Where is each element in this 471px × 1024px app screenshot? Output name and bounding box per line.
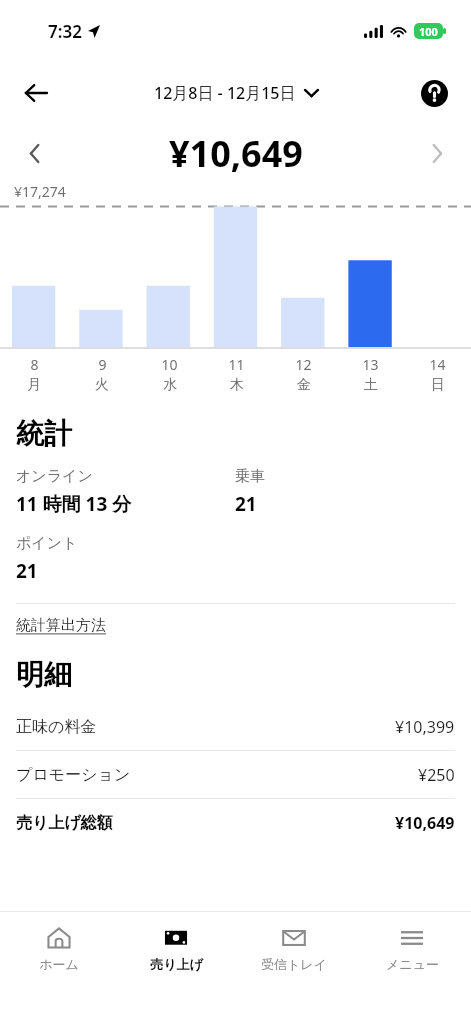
staticText: 金 bbox=[297, 376, 311, 394]
staticText: ポイント bbox=[16, 534, 78, 553]
staticText: 日 bbox=[431, 376, 445, 394]
staticText: 12 bbox=[295, 355, 312, 374]
staticText: ¥17,274 bbox=[14, 182, 66, 201]
staticText: 14 bbox=[429, 355, 446, 374]
staticText: 12月8日 - 12月15日 bbox=[154, 82, 296, 104]
staticText: 21 bbox=[16, 558, 38, 584]
button[interactable]: ヘルプ bbox=[413, 72, 455, 114]
staticText: ¥250 bbox=[418, 764, 455, 786]
staticText: ¥10,649 bbox=[169, 129, 303, 178]
button[interactable]: 売り上げ総額 bbox=[16, 799, 455, 846]
staticText: 水 bbox=[163, 376, 177, 394]
staticText: 統計算出方法 bbox=[16, 616, 106, 635]
button[interactable]: 売り上げ bbox=[117, 912, 235, 972]
button[interactable]: 統計算出方法 bbox=[16, 616, 106, 635]
staticText: オンライン bbox=[16, 467, 93, 486]
staticText: 月 bbox=[27, 376, 41, 394]
staticText: ¥10,649 bbox=[395, 812, 455, 834]
button[interactable]: ホーム bbox=[0, 912, 117, 972]
staticText: プロモーション bbox=[16, 765, 131, 785]
staticText: 火 bbox=[95, 376, 109, 394]
staticText: 受信トレイ bbox=[261, 956, 327, 972]
button[interactable]: 受信トレイ bbox=[235, 912, 353, 972]
staticText: 11 時間 13 分 bbox=[16, 491, 132, 517]
staticText: 7:32 bbox=[48, 20, 82, 43]
staticText: 土 bbox=[364, 376, 378, 394]
staticText: 8 bbox=[30, 355, 39, 374]
staticText: 9 bbox=[98, 355, 107, 374]
staticText: 木 bbox=[230, 376, 244, 394]
staticText: 21 bbox=[235, 491, 257, 517]
staticText: 13 bbox=[362, 355, 379, 374]
button[interactable]: メニュー bbox=[353, 912, 471, 972]
button[interactable]: プロモーション bbox=[16, 751, 455, 798]
staticText: 11 bbox=[228, 355, 245, 374]
staticText: ¥10,399 bbox=[395, 716, 455, 738]
button[interactable]: 次の週 bbox=[417, 133, 457, 173]
staticText: ホーム bbox=[39, 956, 79, 972]
staticText: 乗車 bbox=[235, 467, 265, 486]
button[interactable]: 12月8日 - 12月15日 bbox=[154, 82, 318, 104]
staticText: 100 bbox=[419, 24, 438, 39]
staticText: 10 bbox=[161, 355, 178, 374]
staticText: 統計 bbox=[16, 416, 72, 451]
staticText: メニュー bbox=[386, 956, 439, 972]
staticText: 売り上げ総額 bbox=[16, 813, 113, 833]
button[interactable]: 前の週 bbox=[14, 133, 54, 173]
button[interactable]: 正味の料金 bbox=[16, 703, 455, 750]
button[interactable]: 戻る bbox=[14, 71, 58, 115]
staticText: 明細 bbox=[16, 657, 72, 692]
staticText: 正味の料金 bbox=[16, 717, 97, 737]
staticText: 売り上げ bbox=[150, 956, 203, 972]
